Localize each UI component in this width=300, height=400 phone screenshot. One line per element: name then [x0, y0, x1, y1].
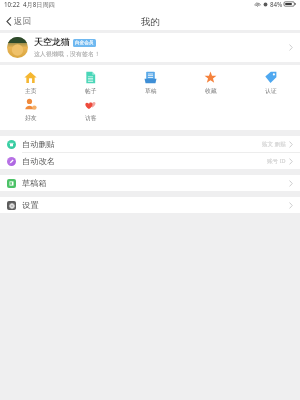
staticText: 自动改名	[22, 156, 55, 166]
button[interactable]: 帖子	[82, 69, 99, 96]
staticText: 好友	[25, 114, 37, 121]
button[interactable]: Auto rename	[0, 153, 300, 169]
button[interactable]: 认证	[262, 69, 279, 96]
staticText: 我的	[141, 16, 160, 28]
staticText: 贴文 删贴	[262, 140, 286, 148]
staticText: 这人很懒哦，没有签名！	[34, 50, 100, 58]
staticText: 帖子	[85, 87, 97, 94]
staticText: 主页	[25, 87, 37, 94]
staticText: 访客	[85, 114, 97, 121]
button[interactable]: 设置	[0, 197, 300, 213]
staticText: 84%	[270, 0, 283, 8]
button[interactable]: 天空龙猫	[0, 33, 300, 62]
button[interactable]: 好友	[22, 96, 39, 123]
button[interactable]: Auto delete posts	[0, 136, 300, 152]
staticText: 草稿	[145, 87, 157, 94]
staticText: 设置	[22, 200, 39, 210]
staticText: 返回	[14, 16, 31, 27]
staticText: 自动删贴	[22, 139, 55, 149]
staticText: 天空龙猫	[34, 37, 70, 48]
staticText: 认证	[265, 87, 277, 94]
staticText: 收藏	[205, 87, 217, 94]
staticText: 白金会员	[75, 40, 94, 46]
button[interactable]: 返回	[0, 14, 37, 29]
staticText: 账号 ID	[267, 157, 286, 165]
staticText: 10:22 4月8日周四	[4, 0, 55, 8]
staticText: 草稿箱	[22, 178, 47, 188]
button[interactable]: 草稿箱	[0, 175, 300, 191]
button[interactable]: 主页	[22, 69, 39, 96]
button[interactable]: 草稿	[142, 69, 159, 96]
button[interactable]: 收藏	[202, 69, 219, 96]
button[interactable]: 访客	[82, 96, 99, 123]
